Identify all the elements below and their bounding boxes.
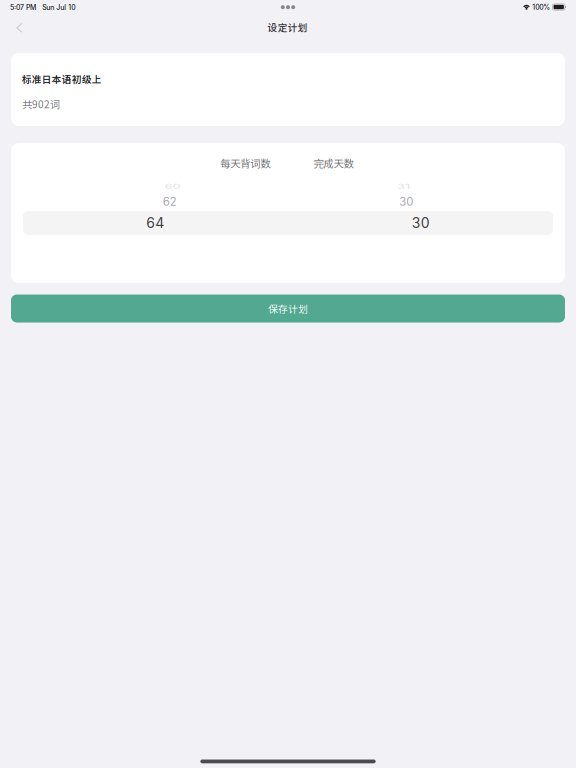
staticText: 62 — [163, 195, 177, 208]
staticText: 设定计划 — [268, 20, 308, 34]
staticText: 每天背词数 — [220, 156, 270, 170]
staticText: 100% — [532, 3, 550, 11]
staticText: 标准日本语初级上 — [22, 72, 102, 86]
staticText: 保存计划 — [268, 301, 308, 316]
staticText: Sun Jul 10 — [42, 3, 75, 12]
staticText: 30 — [399, 195, 413, 208]
staticText: 60 — [165, 179, 181, 194]
staticText: 64 — [146, 214, 164, 231]
staticText: 30 — [412, 214, 430, 231]
button[interactable]: Back — [1, 12, 37, 44]
staticText: 共902词 — [22, 97, 60, 111]
staticText: 5:07 PM — [10, 3, 36, 12]
staticText: 完成天数 — [313, 156, 353, 170]
staticText: 31 — [397, 179, 410, 194]
button[interactable]: 保存计划 — [11, 294, 565, 322]
